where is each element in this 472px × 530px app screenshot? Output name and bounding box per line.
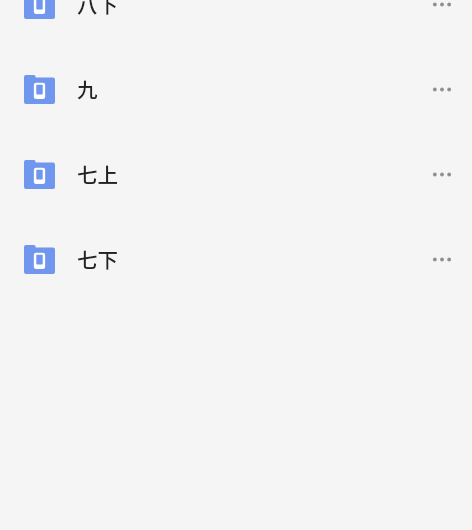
button[interactable]: 八下	[0, 0, 472, 46]
button[interactable]: More options	[420, 0, 464, 26]
button[interactable]: 七上	[0, 131, 472, 216]
staticText: 九	[77, 74, 98, 104]
button[interactable]: 七下	[0, 216, 472, 301]
button[interactable]: More options	[420, 152, 464, 196]
staticText: 七上	[77, 159, 118, 189]
button[interactable]: 九	[0, 46, 472, 131]
button[interactable]: More options	[420, 237, 464, 281]
staticText: 七下	[77, 244, 118, 274]
button[interactable]: More options	[420, 67, 464, 111]
staticText: 八下	[77, 0, 118, 19]
